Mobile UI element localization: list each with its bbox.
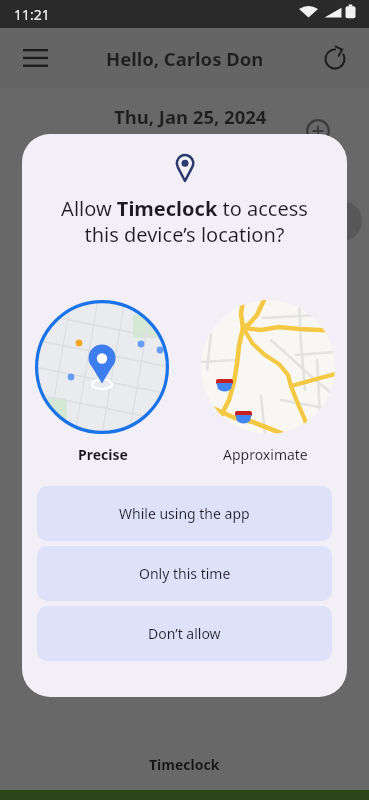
button[interactable]	[35, 300, 169, 434]
button[interactable]	[16, 38, 56, 78]
button[interactable]	[306, 119, 330, 143]
staticText: Precise	[78, 445, 128, 464]
staticText: Don’t allow	[148, 624, 221, 643]
staticText: 11:21	[14, 5, 50, 24]
staticText: Only this time	[139, 564, 231, 583]
button[interactable]: While using the app	[37, 486, 332, 541]
button[interactable]: Only this time	[37, 546, 332, 601]
staticText: Timeclock	[149, 755, 220, 774]
button[interactable]	[201, 300, 335, 434]
button[interactable]: Don’t allow	[37, 606, 332, 661]
staticText: While using the app	[119, 504, 250, 523]
staticText: Thu, Jan 25, 2024	[114, 104, 267, 129]
staticText: Approximate	[223, 445, 308, 464]
button[interactable]	[317, 40, 353, 76]
staticText: Allow Timeclock to access this device’s …	[61, 195, 308, 248]
staticText: Hello, Carlos Don	[106, 46, 264, 71]
